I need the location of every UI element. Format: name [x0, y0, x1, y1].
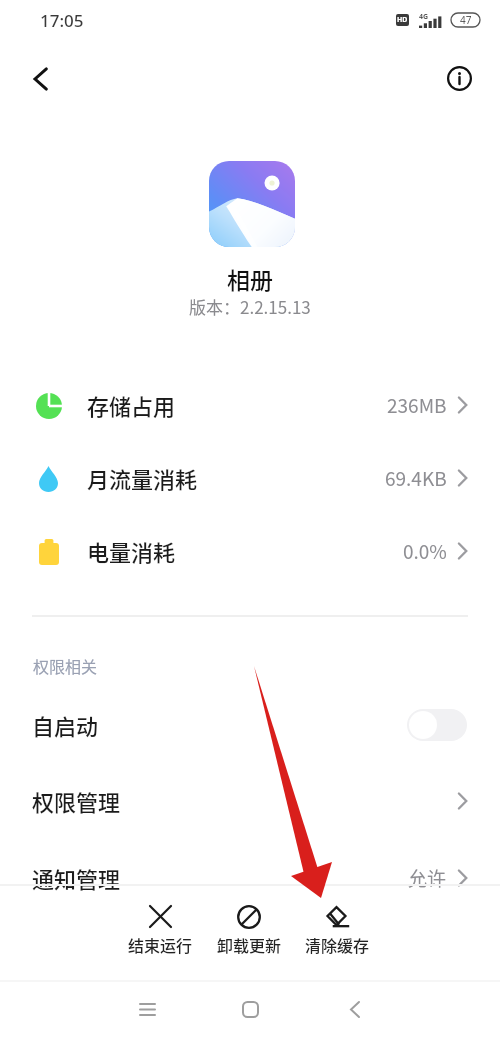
- button[interactable]: Recent apps: [123, 985, 171, 1033]
- staticText: 通知管理: [32, 862, 121, 894]
- staticText: 允许: [408, 864, 447, 892]
- staticText: 权限管理: [32, 785, 121, 817]
- staticText: 4G: [419, 12, 429, 22]
- staticText: 47: [460, 13, 472, 27]
- staticText: 版本：2.2.15.13: [189, 294, 311, 319]
- staticText: 自启动: [32, 709, 99, 741]
- staticText: 月流量消耗: [87, 462, 198, 494]
- button[interactable]: Home: [226, 985, 274, 1033]
- staticText: 清除缓存: [305, 933, 370, 956]
- staticText: 权限相关: [33, 654, 98, 677]
- staticText: 0.0%: [403, 537, 447, 565]
- button[interactable]: 月流量消耗: [0, 442, 500, 514]
- staticText: 存储占用: [87, 389, 176, 421]
- staticText: 17:05: [40, 9, 84, 32]
- button[interactable]: Back: [22, 60, 59, 97]
- button[interactable]: 卸载更新: [205, 904, 293, 956]
- staticText: 69.4KB: [385, 464, 447, 492]
- button[interactable]: App info: [441, 60, 478, 97]
- staticText: 相册: [227, 262, 273, 295]
- button[interactable]: 存储占用: [0, 369, 500, 441]
- button[interactable]: Auto start toggle: [407, 709, 467, 741]
- button[interactable]: 清除缓存: [293, 904, 381, 956]
- button[interactable]: 权限管理: [0, 763, 500, 839]
- button[interactable]: 通知管理: [0, 840, 500, 916]
- staticText: HD: [397, 15, 408, 25]
- button[interactable]: Back: [331, 985, 379, 1033]
- button[interactable]: 自启动: [0, 687, 500, 763]
- button[interactable]: 电量消耗: [0, 515, 500, 587]
- staticText: 236MB: [387, 391, 447, 419]
- button[interactable]: 结束运行: [116, 904, 204, 956]
- staticText: 电量消耗: [87, 535, 176, 567]
- staticText: 卸载更新: [217, 933, 282, 956]
- staticText: 结束运行: [128, 933, 193, 956]
